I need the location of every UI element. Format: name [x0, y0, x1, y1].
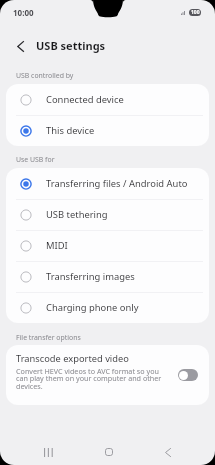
staticText: USB controlled by — [16, 71, 74, 80]
staticText: Use USB for — [16, 155, 55, 164]
staticText: This device — [46, 124, 95, 137]
staticText: Convert HEVC videos to AVC format so you… — [16, 366, 164, 391]
staticText: MIDI — [46, 239, 68, 252]
button[interactable]: Charging phone only — [6, 292, 209, 323]
staticText: Charging phone only — [46, 301, 139, 314]
button[interactable]: Connected device — [6, 84, 209, 115]
button[interactable]: Transcode exported video toggle — [178, 369, 198, 381]
staticText: Transferring files / Android Auto — [46, 177, 188, 190]
button[interactable]: Transcode exported video — [6, 345, 209, 405]
staticText: 10:00 — [13, 7, 34, 18]
button[interactable]: MIDI — [6, 230, 209, 261]
button[interactable]: Back — [148, 437, 188, 465]
button[interactable]: Recents — [28, 437, 68, 465]
button[interactable]: Back — [10, 36, 30, 56]
button[interactable]: Transferring files / Android Auto — [6, 168, 209, 199]
staticText: USB tethering — [46, 208, 108, 221]
button[interactable]: Home — [89, 437, 129, 465]
staticText: Transcode exported video — [16, 352, 129, 365]
staticText: File transfer options — [16, 333, 81, 342]
staticText: Connected device — [46, 93, 124, 106]
button[interactable]: Transferring images — [6, 261, 209, 292]
staticText: 100 — [191, 9, 200, 16]
staticText: Transferring images — [46, 270, 135, 283]
staticText: USB settings — [36, 38, 106, 53]
button[interactable]: This device — [6, 115, 209, 146]
button[interactable]: USB tethering — [6, 199, 209, 230]
